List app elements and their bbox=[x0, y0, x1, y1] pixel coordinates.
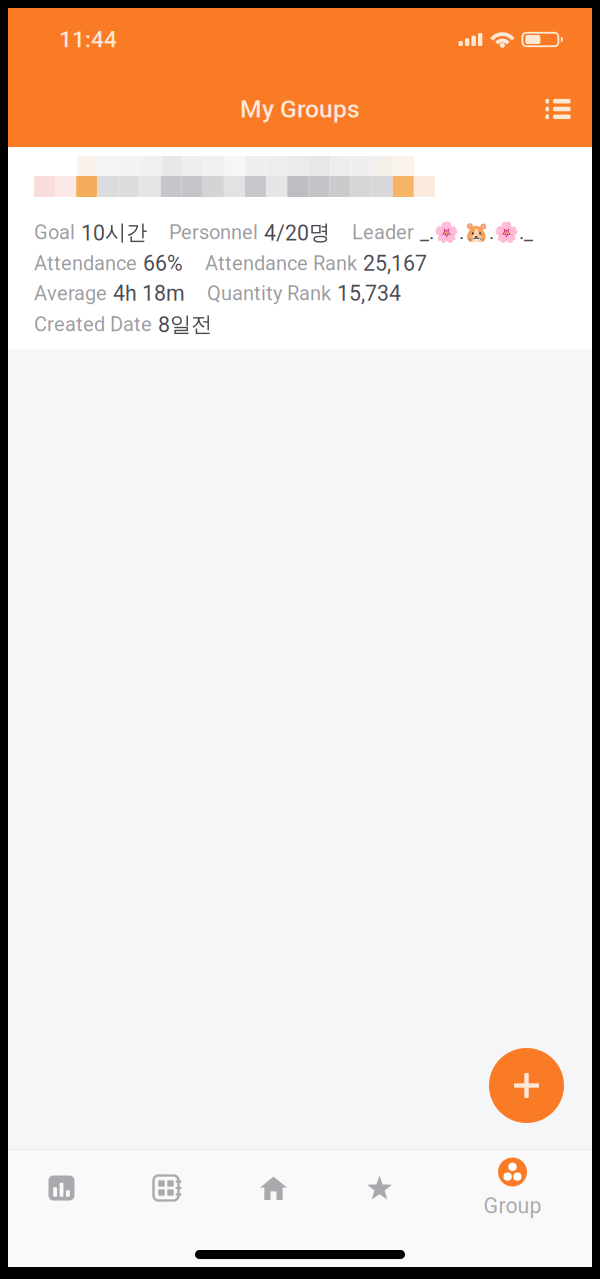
staticText: Attendance Rank bbox=[205, 252, 357, 275]
staticText: Created Date bbox=[34, 313, 152, 336]
button[interactable]: Favorites bbox=[340, 1150, 419, 1226]
staticText: 11:44 bbox=[59, 26, 117, 53]
button[interactable]: Group bbox=[465, 1150, 560, 1226]
staticText: Average bbox=[34, 282, 107, 305]
button[interactable]: Statistics bbox=[22, 1150, 101, 1226]
staticText: 66% bbox=[143, 251, 183, 276]
staticText: Group bbox=[483, 1193, 541, 1218]
staticText: My Groups bbox=[240, 94, 360, 123]
staticText: 8일전 bbox=[158, 311, 212, 338]
button[interactable]: Home bbox=[234, 1150, 313, 1226]
staticText: Personnel bbox=[169, 221, 258, 244]
staticText: 10시간 bbox=[81, 219, 147, 246]
staticText: 4h 18m bbox=[113, 281, 185, 306]
staticText: _.🌸.🐹.🌸._ bbox=[420, 221, 533, 244]
staticText: Goal bbox=[34, 221, 75, 244]
staticText: Leader bbox=[352, 221, 414, 244]
staticText: 15,734 bbox=[337, 281, 401, 306]
staticText: Quantity Rank bbox=[207, 282, 331, 305]
button[interactable]: Sort groups bbox=[534, 85, 582, 133]
button[interactable]: Notes bbox=[128, 1150, 207, 1226]
staticText: 25,167 bbox=[363, 251, 427, 276]
staticText: 4/20명 bbox=[264, 219, 330, 246]
staticText: Attendance bbox=[34, 252, 137, 275]
button[interactable]: Create group bbox=[489, 1048, 564, 1123]
